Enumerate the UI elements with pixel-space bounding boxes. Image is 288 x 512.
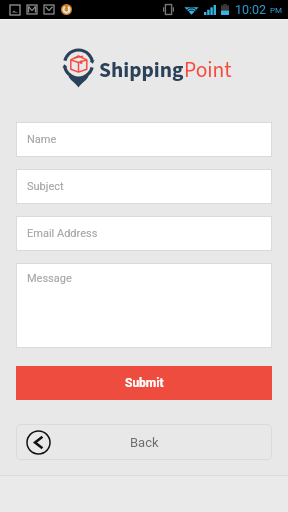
staticText: Submit [125,376,164,390]
staticText: Back [130,435,159,450]
staticText: Subject [27,180,64,193]
button[interactable]: Subject [16,169,272,204]
staticText: Email Address [27,227,98,240]
button[interactable]: Go back [26,430,51,455]
staticText: Shipping [99,55,184,86]
staticText: Message [27,272,72,285]
staticText: Point [184,55,232,86]
button[interactable]: Message [16,263,272,348]
button[interactable]: Email Address [16,216,272,251]
staticText: PM [270,6,283,15]
button[interactable]: Submit [16,366,272,400]
button[interactable]: Name [16,122,272,157]
button[interactable]: Back [16,424,272,460]
staticText: 10:02 [235,2,267,17]
staticText: Name [27,133,57,146]
